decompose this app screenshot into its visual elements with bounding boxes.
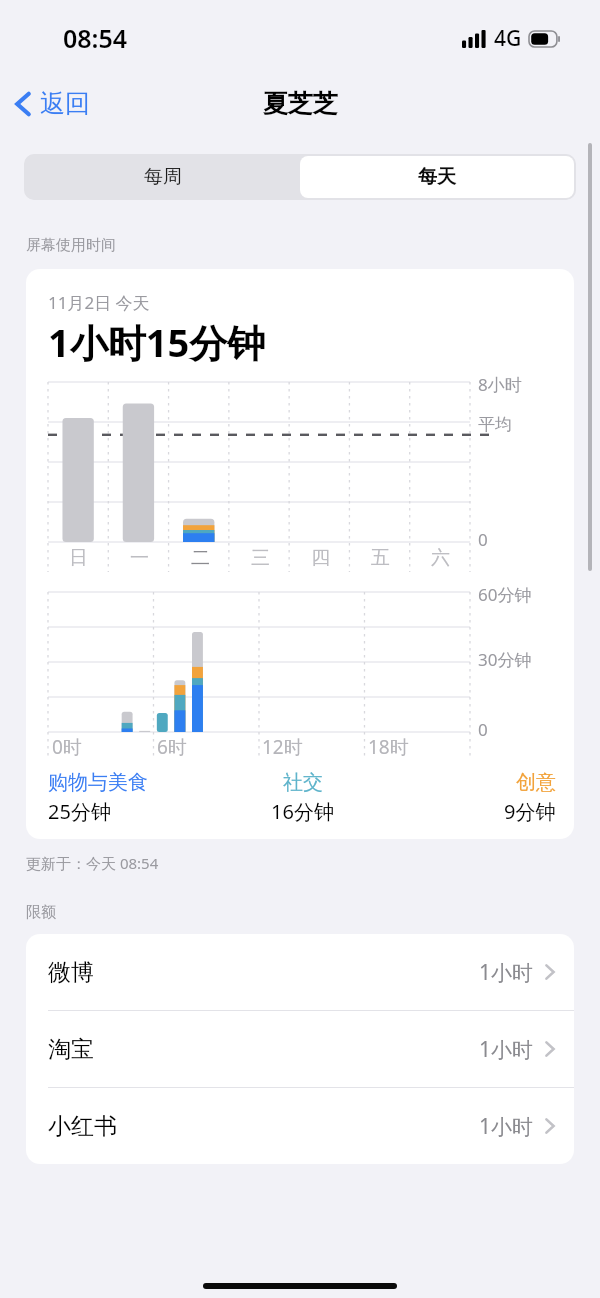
staticText: 屏幕使用时间 xyxy=(26,236,116,255)
staticText: 18时 xyxy=(368,734,409,760)
staticText: 8小时 xyxy=(478,373,522,396)
button[interactable]: 返回 xyxy=(0,82,100,125)
staticText: 每天 xyxy=(418,165,456,189)
staticText: 4G xyxy=(494,24,522,53)
staticText: 购物与美食 xyxy=(48,770,148,795)
staticText: 夏芝芝 xyxy=(263,88,338,119)
staticText: 11月2日 今天 xyxy=(48,291,150,314)
staticText: 0 xyxy=(478,528,488,551)
staticText: 限额 xyxy=(26,903,56,922)
staticText: 1小时15分钟 xyxy=(48,316,266,368)
button[interactable]: 微博 xyxy=(26,934,574,1011)
staticText: 1小时 xyxy=(479,1035,534,1064)
staticText: 60分钟 xyxy=(478,583,532,606)
staticText: 08:54 xyxy=(63,21,128,55)
staticText: 小红书 xyxy=(48,1112,479,1141)
staticText: 25分钟 xyxy=(48,798,111,825)
button[interactable]: 淘宝 xyxy=(26,1011,574,1088)
button[interactable]: 小红书 xyxy=(26,1088,574,1164)
button[interactable]: 11月2日 今天 xyxy=(26,269,574,839)
staticText: 1小时 xyxy=(479,958,534,987)
button[interactable]: 每周 xyxy=(26,156,300,198)
staticText: 二 xyxy=(191,546,210,570)
staticText: 六 xyxy=(431,546,450,570)
staticText: 12时 xyxy=(262,734,303,760)
staticText: 社交 xyxy=(283,770,323,795)
staticText: 6时 xyxy=(157,734,187,760)
staticText: 平均 xyxy=(478,414,512,435)
staticText: 三 xyxy=(251,546,270,570)
staticText: 微博 xyxy=(48,958,479,987)
staticText: 1小时 xyxy=(479,1112,534,1141)
staticText: 五 xyxy=(371,546,390,570)
staticText: 日 xyxy=(69,546,88,570)
button[interactable]: 每天 xyxy=(300,156,574,198)
staticText: 每周 xyxy=(144,165,182,189)
staticText: 0时 xyxy=(52,734,82,760)
staticText: 四 xyxy=(311,546,330,570)
staticText: 更新于：今天 08:54 xyxy=(26,853,159,873)
staticText: 9分钟 xyxy=(504,798,556,825)
staticText: 0 xyxy=(478,718,488,741)
staticText: 淘宝 xyxy=(48,1035,479,1064)
staticText: 创意 xyxy=(516,770,556,795)
staticText: 返回 xyxy=(40,88,90,119)
staticText: 一 xyxy=(130,546,149,570)
staticText: 30分钟 xyxy=(478,648,532,671)
staticText: 16分钟 xyxy=(271,798,334,825)
